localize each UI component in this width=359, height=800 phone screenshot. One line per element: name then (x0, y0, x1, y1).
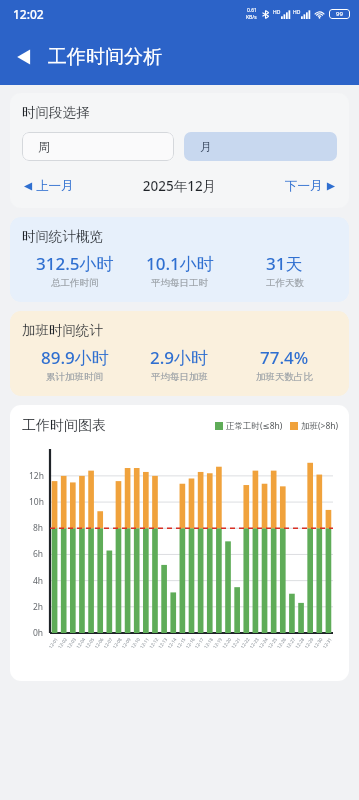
staticText: 99 (336, 10, 343, 18)
staticText: 工作天数 (266, 277, 304, 289)
staticText: 加班(>8h) (301, 420, 339, 432)
staticText: 2.9小时 (150, 346, 209, 369)
button[interactable]: 周 (22, 132, 174, 161)
staticText: 312.5小时 (36, 252, 114, 275)
staticText: 下一月 (285, 178, 323, 194)
staticText: HD (293, 9, 301, 16)
button[interactable]: Back (0, 33, 48, 81)
staticText: HD (273, 9, 281, 16)
staticText: 0.61 (247, 7, 257, 14)
staticText: 上一月 (36, 178, 74, 194)
staticText: 平均每日加班 (151, 371, 208, 383)
staticText: 31天 (266, 252, 303, 275)
staticText: 77.4% (260, 346, 309, 369)
staticText: 正常工时(≤8h) (226, 420, 283, 432)
staticText: 12:02 (13, 6, 44, 22)
staticText: KB/s (246, 14, 257, 21)
button[interactable]: 月 (184, 132, 337, 161)
staticText: 时间统计概览 (22, 228, 103, 245)
staticText: 工作时间图表 (22, 417, 106, 435)
staticText: 总工作时间 (51, 277, 99, 289)
staticText: 工作时间分析 (48, 45, 162, 69)
staticText: 累计加班时间 (46, 371, 103, 383)
staticText: 10.1小时 (146, 252, 214, 275)
staticText: 加班天数占比 (256, 371, 313, 383)
staticText: 月 (200, 139, 212, 154)
button[interactable]: 上一月 (22, 176, 76, 196)
staticText: 时间段选择 (22, 104, 90, 121)
staticText: 加班时间统计 (22, 322, 103, 339)
button[interactable]: 下一月 (283, 176, 337, 196)
staticText: 2025年12月 (76, 177, 283, 195)
staticText: 平均每日工时 (151, 277, 208, 289)
staticText: 89.9小时 (41, 346, 109, 369)
staticText: 周 (38, 139, 50, 154)
